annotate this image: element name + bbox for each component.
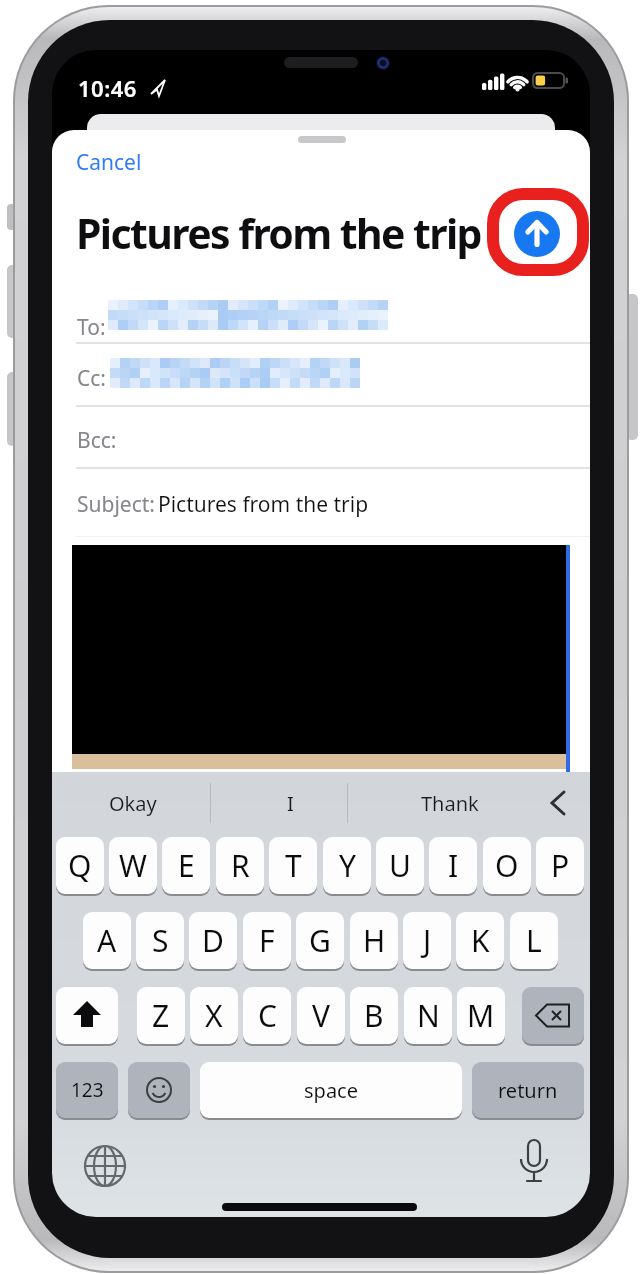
button[interactable]: R bbox=[216, 837, 264, 894]
staticText: 10:46 bbox=[78, 73, 137, 103]
button[interactable]: Z bbox=[137, 987, 185, 1044]
button[interactable]: C bbox=[243, 987, 291, 1044]
staticText: C bbox=[258, 995, 277, 1036]
button[interactable]: 123 bbox=[56, 1062, 118, 1118]
button[interactable]: return bbox=[472, 1062, 584, 1118]
staticText: Z bbox=[152, 995, 170, 1036]
button[interactable]: O bbox=[483, 837, 531, 894]
staticText: E bbox=[178, 845, 195, 886]
staticText: T bbox=[285, 845, 302, 886]
button[interactable]: P bbox=[536, 837, 584, 894]
staticText: I bbox=[287, 790, 294, 817]
button[interactable]: J bbox=[403, 912, 451, 969]
button[interactable]: F bbox=[243, 912, 291, 969]
staticText: return bbox=[498, 1077, 558, 1104]
button[interactable] bbox=[128, 1062, 190, 1118]
button[interactable] bbox=[56, 987, 118, 1044]
staticText: Thank bbox=[421, 790, 479, 817]
button[interactable]: space bbox=[200, 1062, 462, 1118]
button[interactable]: H bbox=[350, 912, 398, 969]
button[interactable] bbox=[83, 1144, 127, 1188]
button[interactable]: K bbox=[456, 912, 504, 969]
staticText: A bbox=[97, 920, 117, 961]
button[interactable]: A bbox=[83, 912, 131, 969]
button[interactable]: T bbox=[269, 837, 317, 894]
staticText: Subject: bbox=[77, 490, 155, 519]
staticText: O bbox=[495, 845, 519, 886]
staticText: Y bbox=[339, 845, 356, 886]
staticText: X bbox=[205, 995, 223, 1036]
button[interactable]: Q bbox=[56, 837, 104, 894]
staticText: G bbox=[309, 920, 331, 961]
button[interactable]: D bbox=[189, 912, 237, 969]
button[interactable]: E bbox=[162, 837, 210, 894]
button[interactable]: M bbox=[457, 987, 505, 1044]
button[interactable]: I bbox=[429, 837, 477, 894]
button[interactable]: N bbox=[404, 987, 452, 1044]
staticText: R bbox=[231, 845, 250, 886]
staticText: N bbox=[417, 995, 440, 1036]
button[interactable]: X bbox=[190, 987, 238, 1044]
button[interactable]: Okay bbox=[93, 786, 173, 820]
staticText: B bbox=[364, 995, 384, 1036]
staticText: F bbox=[259, 920, 275, 961]
staticText: I bbox=[448, 845, 459, 886]
staticText: D bbox=[202, 920, 224, 961]
staticText: P bbox=[551, 845, 570, 886]
button[interactable]: W bbox=[109, 837, 157, 894]
staticText: H bbox=[363, 920, 386, 961]
button[interactable]: S bbox=[136, 912, 184, 969]
staticText: K bbox=[471, 920, 490, 961]
button[interactable]: I bbox=[250, 786, 330, 820]
button[interactable]: Y bbox=[323, 837, 371, 894]
staticText: Okay bbox=[109, 790, 157, 817]
staticText: Pictures from the trip bbox=[76, 205, 481, 261]
button[interactable]: Cancel bbox=[76, 148, 142, 177]
staticText: L bbox=[526, 920, 542, 961]
button[interactable] bbox=[522, 987, 584, 1044]
staticText: To: bbox=[77, 313, 106, 342]
button[interactable] bbox=[518, 1138, 550, 1190]
staticText: Pictures from the trip bbox=[158, 490, 369, 519]
button[interactable]: U bbox=[376, 837, 424, 894]
button[interactable]: B bbox=[350, 987, 398, 1044]
staticText: J bbox=[423, 920, 432, 961]
staticText: S bbox=[152, 920, 169, 961]
button[interactable]: G bbox=[296, 912, 344, 969]
staticText: Cc: bbox=[77, 364, 106, 393]
staticText: 123 bbox=[71, 1077, 104, 1103]
staticText: U bbox=[389, 845, 411, 886]
staticText: M bbox=[467, 995, 495, 1036]
button[interactable]: V bbox=[297, 987, 345, 1044]
staticText: Q bbox=[68, 845, 92, 886]
staticText: W bbox=[119, 845, 147, 886]
button[interactable]: L bbox=[510, 912, 558, 969]
staticText: space bbox=[304, 1077, 358, 1104]
button[interactable] bbox=[548, 790, 568, 816]
button[interactable] bbox=[514, 211, 560, 257]
staticText: Bcc: bbox=[77, 426, 117, 455]
staticText: V bbox=[312, 995, 330, 1036]
button[interactable]: Thank bbox=[410, 786, 490, 820]
